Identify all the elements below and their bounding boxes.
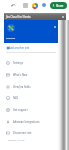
button[interactable]: Atlassian Integrations <box>4 116 58 127</box>
button[interactable]: Add another site <box>4 44 58 52</box>
button[interactable]: What's New <box>4 69 58 80</box>
staticText: Version v1.0.90 <box>8 139 25 142</box>
button[interactable]: Insert image <box>23 3 28 8</box>
staticText: Add another site <box>9 46 30 50</box>
staticText: Settings <box>13 61 23 65</box>
staticText: Share <box>56 4 64 8</box>
staticText: View Jira fields <box>13 85 31 89</box>
button[interactable]: Account <box>42 3 46 7</box>
staticText: Atlassian Integrations <box>13 120 40 124</box>
button[interactable]: Share <box>50 2 67 9</box>
staticText: website <box>6 36 16 39</box>
staticText: Jira Cloud for Sheets <box>6 15 31 19</box>
button[interactable]: Add-ons <box>32 3 38 9</box>
button[interactable]: View Jira fields <box>4 81 58 92</box>
staticText: What's New <box>13 73 28 77</box>
button[interactable]: Disconnect site <box>4 127 58 138</box>
button[interactable]: Close panel <box>52 24 58 30</box>
staticText: FAQ <box>13 96 18 100</box>
button[interactable]: Settings <box>4 57 58 68</box>
staticText: Get support <box>13 108 28 112</box>
button[interactable]: FAQ <box>4 92 58 103</box>
button[interactable]: Close add-on <box>60 14 66 20</box>
button[interactable]: Get support <box>4 104 58 115</box>
button[interactable]: Undo <box>11 3 16 8</box>
staticText: Disconnect site <box>13 131 32 135</box>
